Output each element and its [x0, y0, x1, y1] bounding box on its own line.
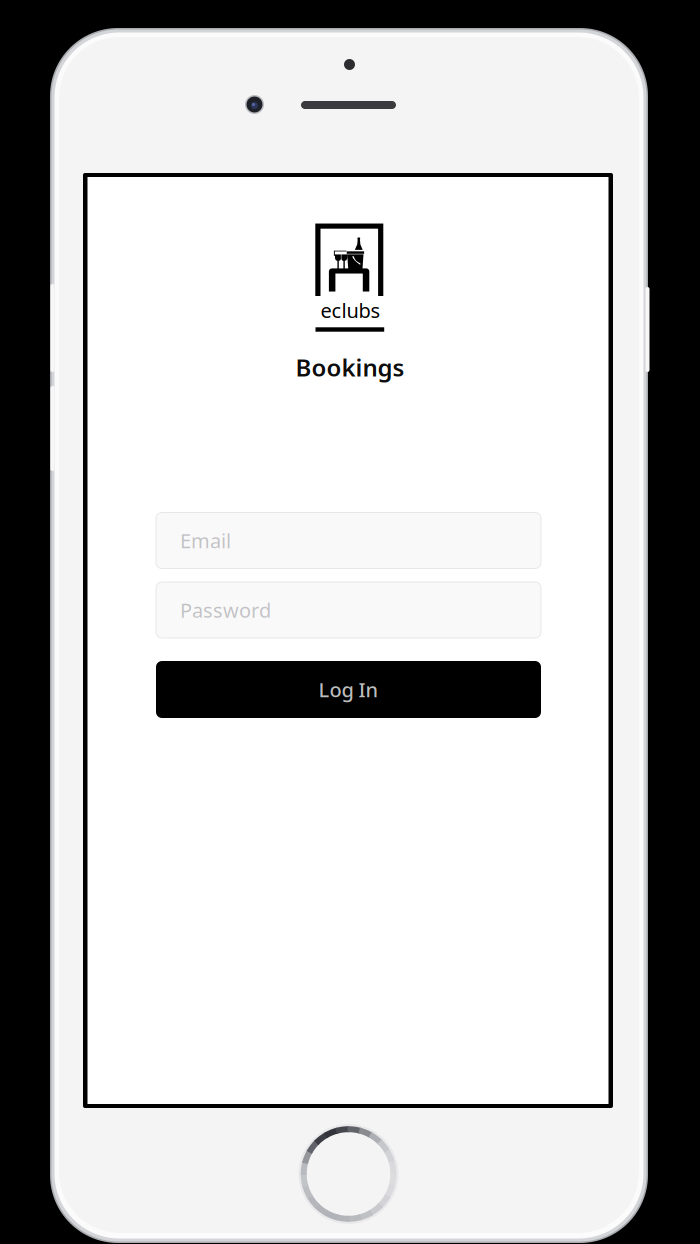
- staticText: Bookings: [295, 351, 404, 383]
- button[interactable]: Email: [156, 512, 541, 568]
- staticText: Email: [180, 527, 231, 554]
- button[interactable]: Password: [156, 582, 541, 638]
- staticText: Password: [180, 597, 271, 623]
- staticText: eclubs: [320, 297, 380, 324]
- staticText: Log In: [318, 676, 378, 703]
- button[interactable]: Log In: [156, 661, 541, 718]
- button[interactable]: Home: [300, 1126, 396, 1222]
